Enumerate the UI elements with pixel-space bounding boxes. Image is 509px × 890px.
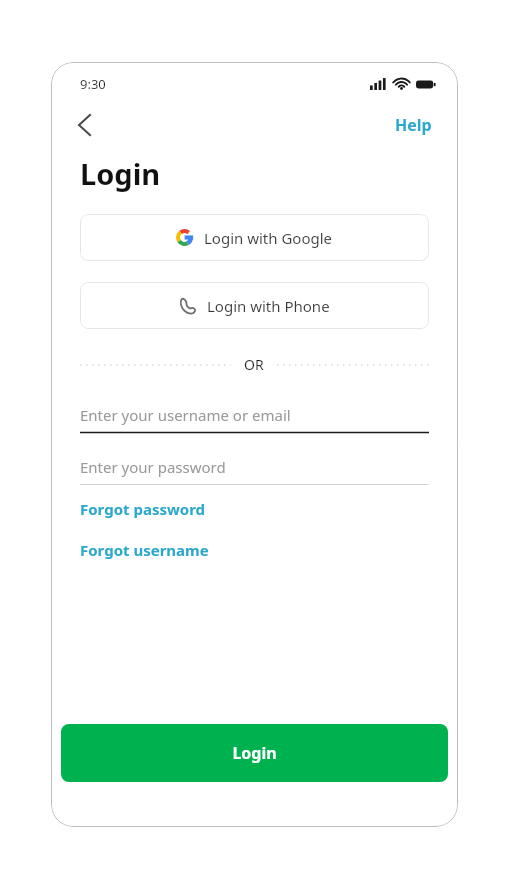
staticText: Login with Google: [204, 228, 333, 248]
button[interactable]: Forgot username: [80, 540, 209, 560]
staticText: Login: [232, 742, 277, 764]
staticText: Forgot username: [80, 540, 209, 560]
button[interactable]: Enter your username or email: [80, 398, 429, 435]
staticText: Help: [395, 114, 432, 136]
staticText: 9:30: [80, 75, 106, 93]
button[interactable]: Login with Phone: [80, 282, 429, 329]
staticText: Enter your username or email: [80, 405, 291, 425]
button[interactable]: Enter your password: [80, 450, 429, 487]
staticText: Forgot password: [80, 499, 206, 519]
staticText: Enter your password: [80, 457, 226, 477]
button[interactable]: Login: [61, 724, 448, 782]
button[interactable]: Back: [65, 106, 103, 144]
staticText: Login with Phone: [207, 296, 330, 316]
button[interactable]: Forgot password: [80, 499, 206, 519]
button[interactable]: Help: [391, 110, 436, 140]
staticText: OR: [244, 355, 264, 374]
staticText: Login: [80, 154, 161, 193]
button[interactable]: Login with Google: [80, 214, 429, 261]
